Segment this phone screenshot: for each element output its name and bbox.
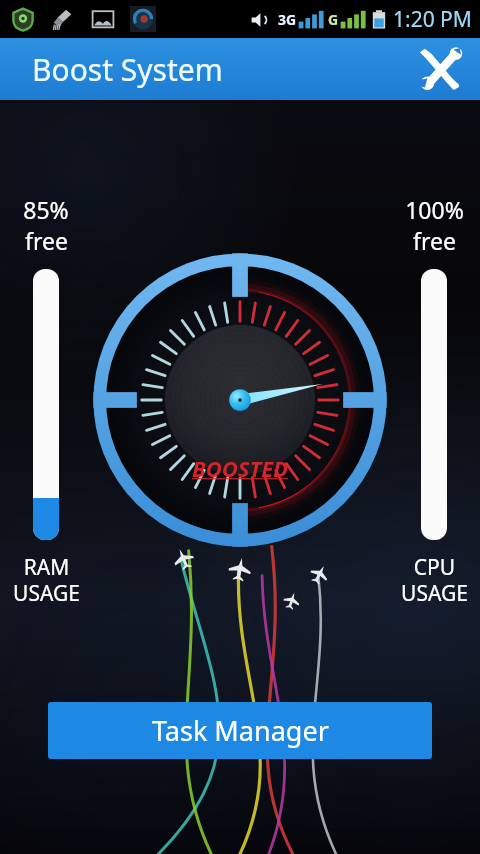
staticText: Task Manager [152,712,329,749]
staticText: 3G [278,10,297,29]
button[interactable]: 100% [388,194,480,607]
staticText: free [413,225,456,256]
staticText: Boost System [32,49,223,90]
staticText: BOOSTED [192,453,289,483]
staticText: 100% [405,194,464,225]
button[interactable]: Task Manager [48,702,432,759]
staticText: 85% [23,194,69,225]
button[interactable]: Tools settings [414,43,466,95]
staticText: G [328,10,339,29]
staticText: CPU USAGE [401,553,468,607]
staticText: free [25,225,68,256]
button[interactable]: 85% [0,194,92,607]
staticText: RAM USAGE [13,553,80,607]
button[interactable]: Boost meter, boosted [90,250,390,550]
staticText: 1:20 PM [393,5,472,34]
